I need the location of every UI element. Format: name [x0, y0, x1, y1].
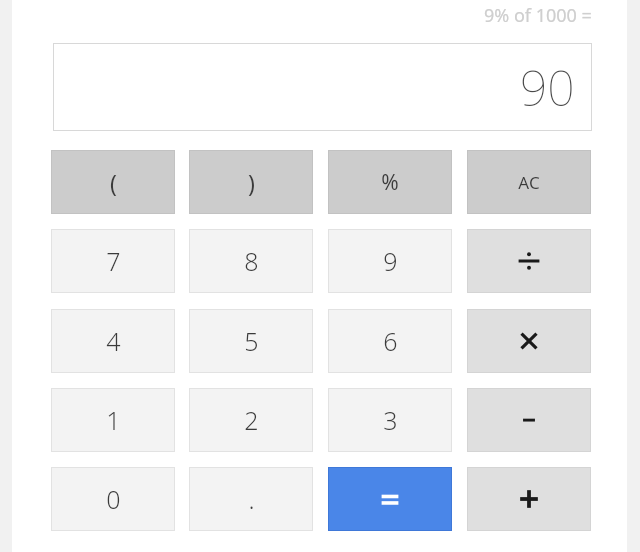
staticText: % [381, 168, 399, 197]
button[interactable]: 0 [51, 467, 175, 531]
button[interactable]: AC [467, 150, 591, 214]
button[interactable]: 1 [51, 388, 175, 452]
button[interactable]: 8 [189, 229, 313, 293]
button[interactable]: 9 [328, 229, 452, 293]
staticText: 6 [383, 324, 398, 358]
staticText: 1 [106, 403, 121, 437]
staticText: . [248, 482, 255, 516]
button[interactable]: 5 [189, 309, 313, 373]
button[interactable]: 2 [189, 388, 313, 452]
staticText: 7 [106, 244, 121, 278]
button[interactable]: Minus [467, 388, 591, 452]
button[interactable]: 3 [328, 388, 452, 452]
button[interactable]: % [328, 150, 452, 214]
button[interactable]: Divide [467, 229, 591, 293]
staticText: ) [248, 167, 255, 198]
staticText: 8 [244, 244, 259, 278]
staticText: 5 [244, 324, 259, 358]
staticText: 3 [383, 403, 398, 437]
staticText: 0 [106, 482, 121, 516]
staticText: ( [110, 167, 117, 198]
button[interactable]: 6 [328, 309, 452, 373]
button[interactable]: Equals [328, 467, 452, 531]
staticText: 9 [383, 244, 398, 278]
button[interactable]: 7 [51, 229, 175, 293]
button[interactable]: Multiply [467, 309, 591, 373]
staticText: AC [518, 171, 540, 194]
staticText: 4 [106, 324, 121, 358]
button[interactable]: ( [51, 150, 175, 214]
staticText: 9% of 1000 = [484, 3, 592, 28]
button[interactable]: ) [189, 150, 313, 214]
button[interactable]: 90 [53, 43, 592, 131]
button[interactable]: 4 [51, 309, 175, 373]
button[interactable]: . [189, 467, 313, 531]
staticText: 2 [244, 403, 259, 437]
button[interactable]: Plus [467, 467, 591, 531]
staticText: 90 [520, 55, 575, 120]
